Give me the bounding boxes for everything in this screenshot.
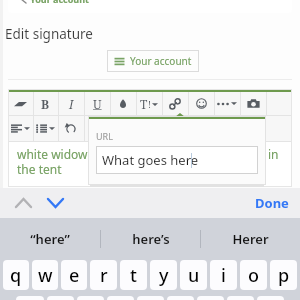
button[interactable]: Insert photo [240,92,266,115]
staticText: here’s [132,230,170,248]
button[interactable]: Text colour [110,92,136,115]
button[interactable]: o [240,260,267,290]
staticText: p [278,263,290,288]
button[interactable]: Herer [201,218,300,260]
staticText: Herer [232,230,269,248]
staticText: r [100,263,108,288]
button[interactable]: i [210,260,237,290]
button[interactable]: Text size [136,92,162,115]
button[interactable]: Undo [58,116,84,141]
button[interactable]: u [180,260,207,290]
staticText: i [221,263,226,288]
button[interactable]: More [84,116,110,141]
button[interactable]: w [32,260,58,290]
button[interactable] [162,116,188,141]
staticText: w [38,263,53,288]
button[interactable]: s [47,296,74,300]
button[interactable]: y [150,260,177,290]
button[interactable]: Emoji [188,92,214,115]
button[interactable]: j [197,296,224,300]
staticText: T [140,96,148,112]
staticText: What goes here [102,151,199,169]
button[interactable]: “here” [0,218,100,260]
button[interactable]: t [120,260,147,290]
button[interactable]: g [137,296,164,300]
staticText: white widow [17,146,88,162]
staticText: ! [148,98,151,110]
button[interactable] [110,116,136,141]
button[interactable]: here’s [101,218,200,260]
staticText: I [69,96,74,112]
button[interactable]: Paragraph alignment [8,116,33,141]
button[interactable]: a [16,296,44,300]
button[interactable]: Lists [33,116,58,141]
button[interactable]: Underline [84,92,110,115]
button[interactable] [136,116,162,141]
button[interactable]: e [61,260,87,290]
staticText: y [159,263,169,288]
button[interactable]: Insert link [162,92,188,115]
button[interactable]: Your account [107,50,199,72]
staticText: B [41,96,50,112]
staticText: Edit signature [5,25,93,43]
staticText: o [248,263,259,288]
button[interactable]: Previous field [7,189,39,217]
button[interactable]: Done [244,188,300,218]
button[interactable]: Clear formatting [8,92,33,115]
button[interactable]: l [257,296,284,300]
button[interactable]: p [270,260,297,290]
button[interactable]: k [227,296,254,300]
button[interactable]: f [107,296,134,300]
button[interactable]: More [266,92,292,115]
staticText: “here” [30,230,70,248]
button[interactable]: More options [214,92,240,115]
button[interactable]: What goes here [96,146,258,174]
button[interactable] [266,116,292,141]
button[interactable] [240,116,266,141]
staticText: u [188,263,200,288]
button[interactable]: Italic [58,92,84,115]
button[interactable]: Your account [8,0,292,13]
staticText: in [268,146,279,162]
staticText: URL [96,130,113,142]
button[interactable]: Bold [33,92,58,115]
button[interactable] [188,116,214,141]
staticText: U [93,96,102,112]
staticText: Your account [130,54,192,68]
staticText: t [130,263,137,288]
staticText: e [69,263,80,288]
staticText: the tent [17,161,62,177]
staticText: q [10,263,22,288]
button[interactable]: q [3,260,29,290]
button[interactable]: Next field [39,189,71,217]
button[interactable] [214,116,240,141]
button[interactable]: d [77,296,104,300]
staticText: Done [255,194,289,212]
staticText: Your account [30,0,89,5]
button[interactable]: r [90,260,117,290]
button[interactable]: h [167,296,194,300]
